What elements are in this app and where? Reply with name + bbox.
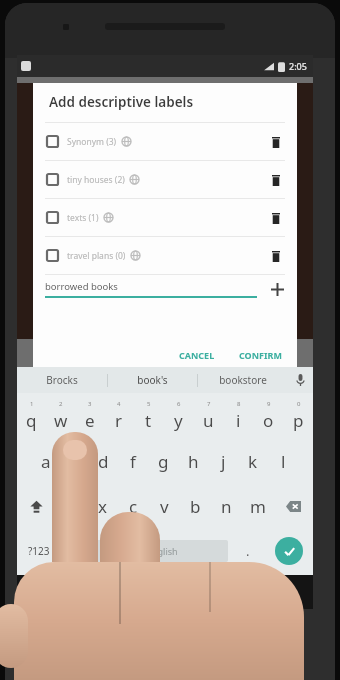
button[interactable]: Shift [17, 484, 56, 529]
staticText: b [190, 495, 201, 518]
staticText: bookstore [219, 373, 267, 387]
button[interactable]: Backspace [273, 484, 313, 529]
staticText: n [221, 495, 232, 518]
staticText: 4 [117, 400, 121, 408]
staticText: p [293, 409, 304, 432]
staticText: w [54, 409, 68, 432]
staticText: travel plans (0) [67, 250, 126, 262]
staticText: o [263, 409, 274, 432]
staticText: a [41, 450, 51, 473]
button[interactable]: CONFIRM [232, 346, 289, 364]
button[interactable]: a [31, 439, 60, 484]
button[interactable]: Delete label [267, 247, 285, 265]
staticText: k [248, 450, 258, 473]
button[interactable]: s [60, 439, 89, 484]
staticText: u [203, 409, 214, 432]
button[interactable]: Delete label [267, 209, 285, 227]
staticText: r [115, 409, 123, 432]
staticText: y [174, 409, 183, 432]
staticText: 6 [177, 400, 181, 408]
staticText: ?123 [28, 544, 50, 558]
button[interactable]: 7 [193, 393, 223, 439]
button[interactable]: 5 [133, 393, 163, 439]
staticText: CANCEL [179, 349, 215, 361]
staticText: e [85, 409, 95, 432]
staticText: f [130, 450, 136, 473]
staticText: CONFIRM [239, 349, 282, 361]
button[interactable]: d [89, 439, 118, 484]
staticText: j [221, 450, 226, 473]
button[interactable]: , [60, 529, 93, 573]
staticText: 0 [297, 400, 301, 408]
button[interactable]: b [180, 484, 211, 529]
staticText: g [158, 450, 169, 473]
staticText: book's [137, 373, 168, 387]
button[interactable]: Delete label [267, 133, 285, 151]
staticText: v [160, 495, 169, 518]
staticText: l [281, 450, 286, 473]
staticText: tiny houses (2) [67, 174, 125, 186]
button[interactable]: texts (1) [33, 199, 297, 236]
staticText: 8 [237, 400, 241, 408]
staticText: c [129, 495, 138, 518]
button[interactable]: n [211, 484, 242, 529]
button[interactable]: ?123 [17, 529, 60, 573]
staticText: Add descriptive labels [49, 93, 194, 111]
button[interactable]: Voice input [287, 367, 313, 393]
button[interactable]: 0 [283, 393, 313, 439]
button[interactable]: 9 [253, 393, 283, 439]
button[interactable]: Delete label [267, 171, 285, 189]
button[interactable]: c [118, 484, 149, 529]
staticText: i [236, 409, 241, 432]
staticText: 9 [267, 400, 271, 408]
button[interactable]: Enter [264, 529, 313, 573]
staticText: Synonym (3) [67, 136, 117, 148]
button[interactable]: 6 [163, 393, 193, 439]
staticText: m [250, 495, 266, 518]
button[interactable]: 4 [104, 393, 133, 439]
button[interactable]: 2 [46, 393, 75, 439]
button[interactable]: g [148, 439, 178, 484]
button[interactable]: CANCEL [172, 346, 222, 364]
staticText: d [98, 450, 109, 473]
button[interactable]: book's [108, 373, 197, 387]
staticText: 1 [30, 400, 34, 408]
staticText: texts (1) [67, 212, 99, 224]
staticText: t [145, 409, 152, 432]
button[interactable]: bookstore [198, 373, 287, 387]
button[interactable]: j [208, 439, 238, 484]
button[interactable]: Brocks [17, 373, 107, 387]
button[interactable]: x [87, 484, 118, 529]
staticText: 7 [207, 400, 211, 408]
staticText: Brocks [46, 373, 78, 387]
button[interactable]: f [118, 439, 148, 484]
button[interactable]: . [231, 529, 264, 573]
button[interactable]: tiny houses (2) [33, 161, 297, 198]
staticText: q [26, 409, 37, 432]
staticText: borrowed books [45, 280, 118, 293]
staticText: s [70, 450, 79, 473]
staticText: 3 [88, 400, 92, 408]
button[interactable]: v [149, 484, 180, 529]
button[interactable]: Space [96, 540, 228, 562]
button[interactable]: Add label [267, 279, 287, 299]
staticText: h [188, 450, 199, 473]
staticText: 2 [59, 400, 63, 408]
button[interactable]: travel plans (0) [33, 237, 297, 274]
button[interactable]: 8 [223, 393, 253, 439]
button[interactable]: h [178, 439, 208, 484]
button[interactable]: l [268, 439, 298, 484]
button[interactable]: k [238, 439, 268, 484]
button[interactable]: 3 [75, 393, 104, 439]
button[interactable]: m [242, 484, 273, 529]
button[interactable]: Synonym (3) [33, 123, 297, 160]
staticText: x [98, 495, 107, 518]
button[interactable]: 1 [17, 393, 46, 439]
staticText: 2:05 [289, 60, 307, 72]
button[interactable]: z [56, 484, 87, 529]
